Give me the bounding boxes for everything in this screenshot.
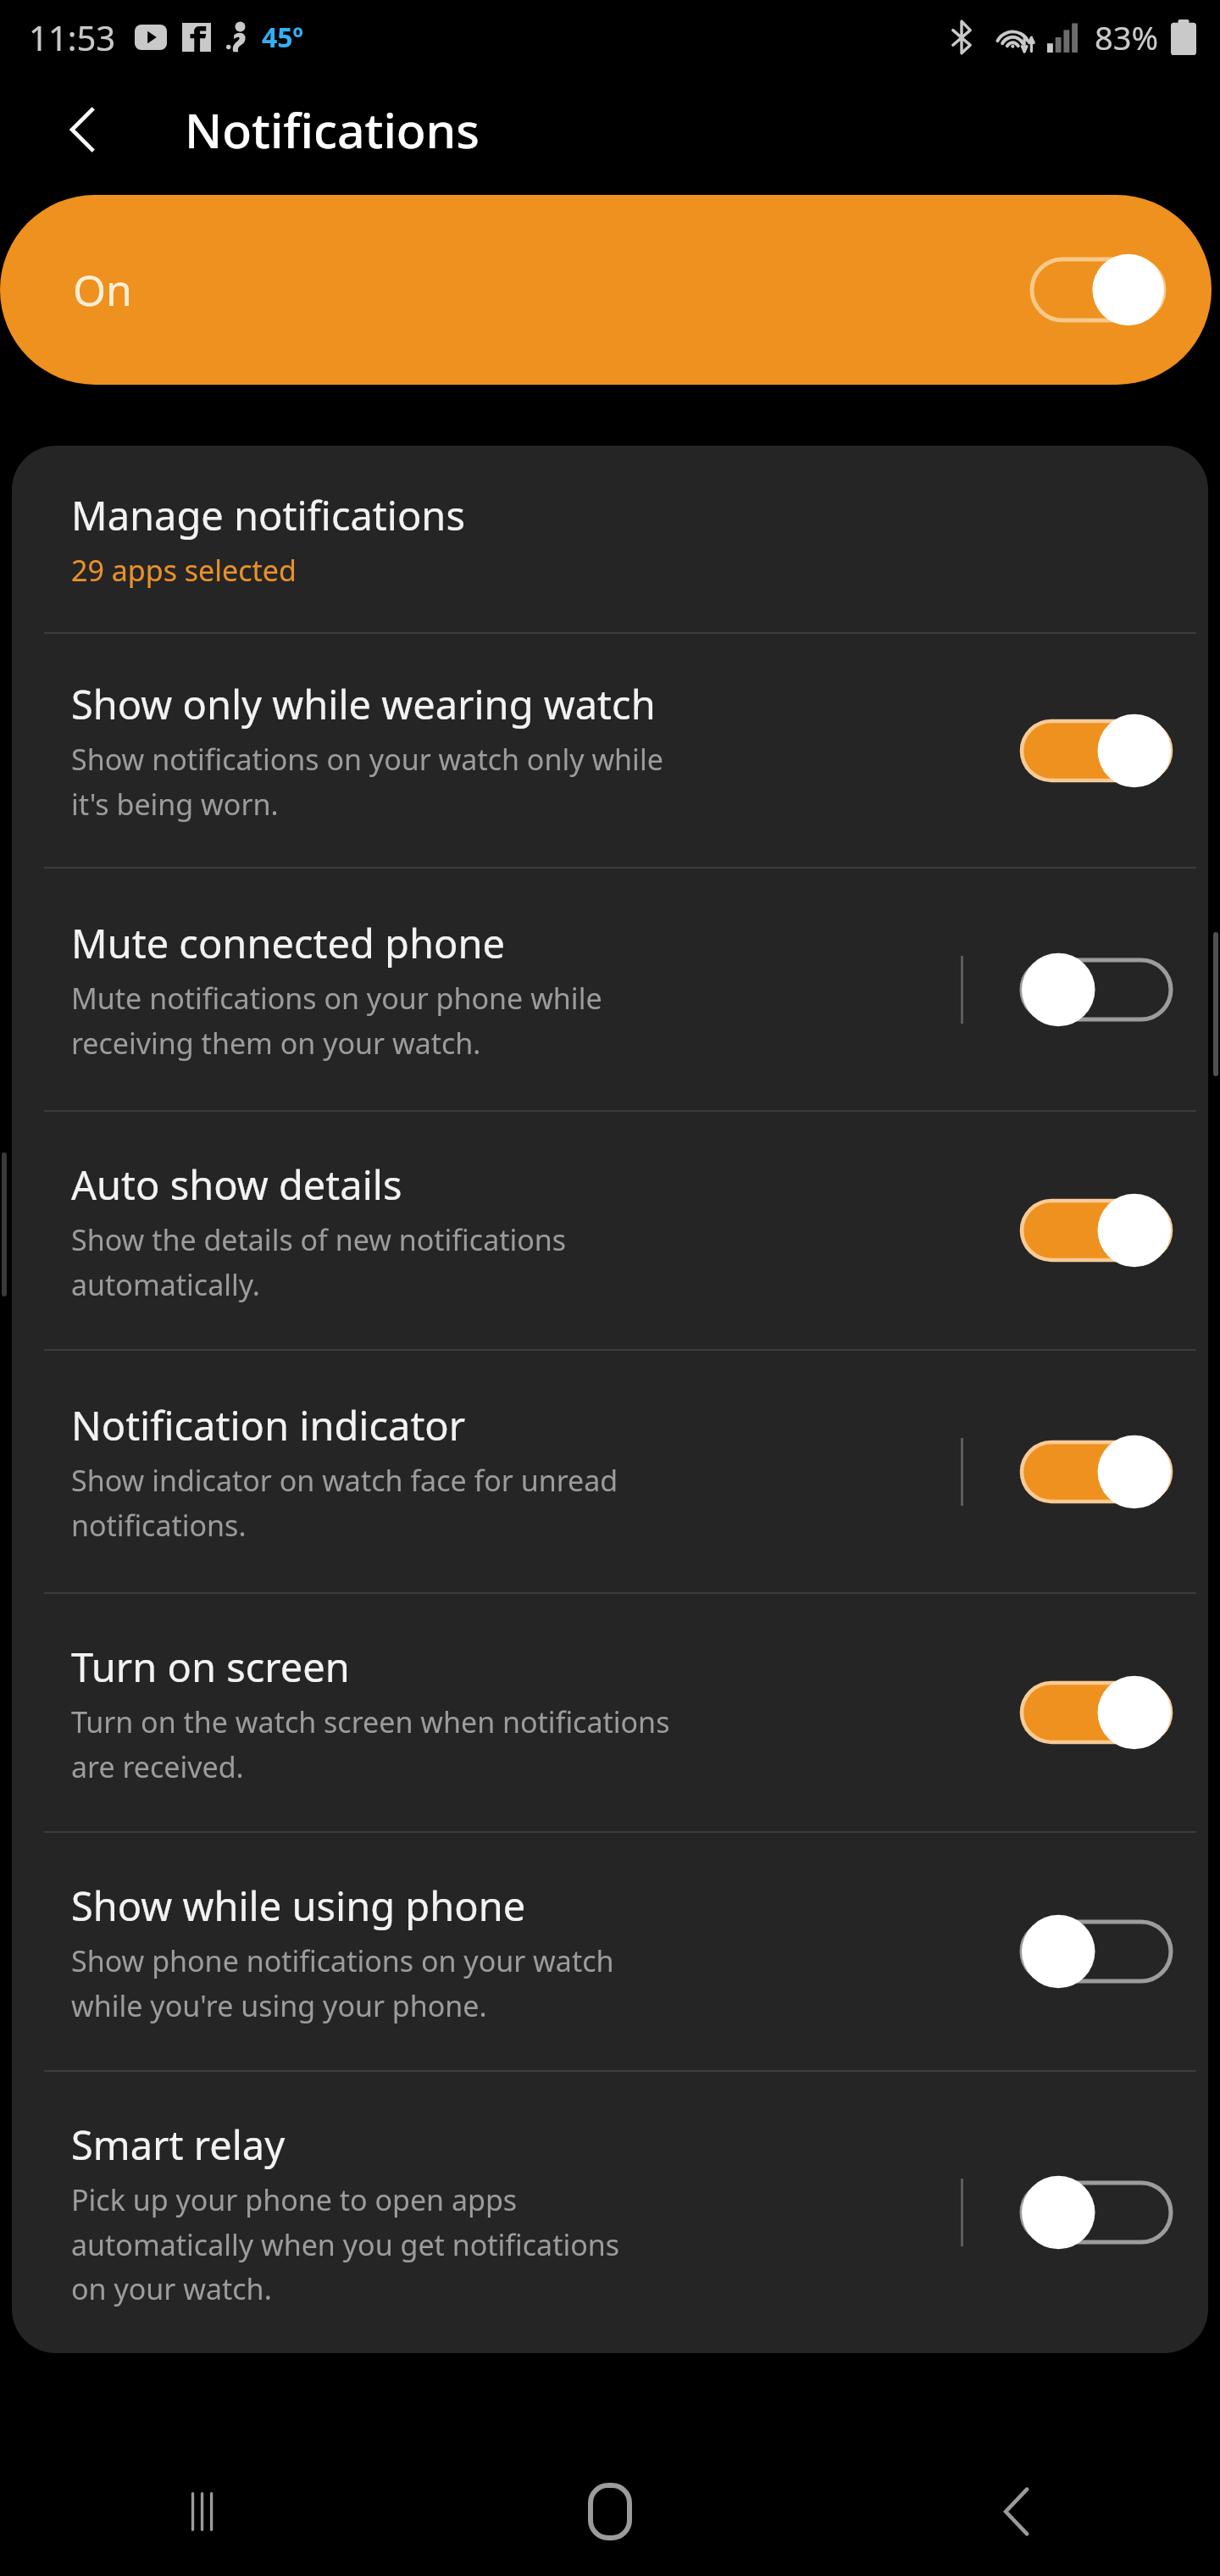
staticText: Auto show details bbox=[71, 1158, 402, 1212]
button[interactable]: Back bbox=[49, 96, 117, 164]
staticText: Smart relay bbox=[71, 2118, 286, 2172]
staticText: Notification indicator bbox=[71, 1398, 466, 1452]
button[interactable]: Show only while wearing watch bbox=[12, 634, 1208, 867]
button[interactable]: Turn on screen bbox=[12, 1594, 1208, 1831]
button[interactable]: Smart relay bbox=[12, 2072, 1208, 2353]
button[interactable]: Smart relay bbox=[1022, 2173, 1171, 2251]
staticText: Show while using phone bbox=[71, 1879, 526, 1933]
button[interactable]: Back bbox=[813, 2447, 1220, 2576]
button[interactable]: Home bbox=[407, 2447, 813, 2576]
staticText: 45º bbox=[262, 19, 303, 56]
button[interactable]: Notification indicator bbox=[1022, 1433, 1171, 1511]
staticText: Notifications bbox=[185, 97, 480, 163]
staticText: Mute connected phone bbox=[71, 916, 506, 970]
staticText: Show phone notifications on your watch w… bbox=[71, 1941, 614, 2025]
staticText: Turn on screen bbox=[71, 1640, 350, 1694]
staticText: 29 apps selected bbox=[71, 551, 297, 590]
staticText: Turn on the watch screen when notificati… bbox=[71, 1702, 670, 1786]
button[interactable]: Show while using phone bbox=[1022, 1913, 1171, 1990]
button[interactable]: Show while using phone bbox=[12, 1833, 1208, 2070]
staticText: Manage notifications bbox=[71, 488, 465, 542]
staticText: Pick up your phone to open apps automati… bbox=[71, 2180, 620, 2308]
staticText: Show notifications on your watch only wh… bbox=[71, 740, 663, 824]
staticText: On bbox=[73, 261, 132, 319]
button[interactable]: Recents bbox=[0, 2447, 407, 2576]
button[interactable]: Notification indicator bbox=[12, 1351, 1208, 1592]
button[interactable]: On bbox=[0, 195, 1212, 385]
staticText: 11:53 bbox=[29, 14, 116, 60]
button[interactable]: Auto show details bbox=[12, 1112, 1208, 1349]
staticText: Show only while wearing watch bbox=[71, 677, 656, 731]
staticText: Mute notifications on your phone while r… bbox=[71, 979, 602, 1063]
button[interactable]: Turn on screen bbox=[1022, 1674, 1171, 1752]
button[interactable]: Show only while wearing watch bbox=[1022, 712, 1171, 790]
button[interactable]: Mute connected phone bbox=[12, 869, 1208, 1110]
staticText: Show the details of new notifications au… bbox=[71, 1220, 567, 1304]
button[interactable]: Auto show details bbox=[1022, 1191, 1171, 1269]
button[interactable]: Mute connected phone bbox=[1022, 951, 1171, 1029]
staticText: Show indicator on watch face for unread … bbox=[71, 1461, 618, 1545]
button[interactable]: Manage notifications bbox=[12, 446, 1208, 632]
staticText: 83% bbox=[1095, 15, 1159, 59]
